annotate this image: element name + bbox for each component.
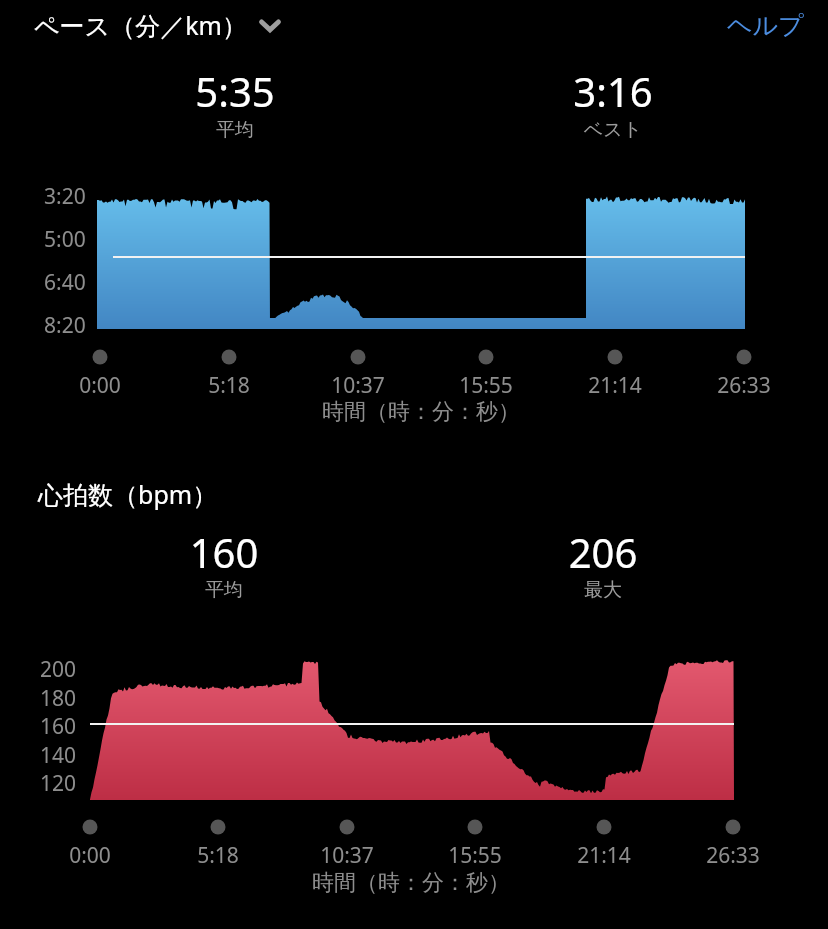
staticText: 6:40 [44,268,86,297]
staticText: 平均 [85,118,385,142]
staticText: 21:14 [515,371,715,400]
staticText: 26:33 [633,841,828,870]
staticText: ヘルプ [727,10,804,41]
staticText: 180 [40,684,77,713]
staticText: 時間（時：分：秒） [221,398,621,426]
staticText: 5:00 [44,225,86,254]
staticText: 26:33 [644,371,828,400]
button[interactable]: ペース（分／km） [34,4,293,46]
staticText: 200 [40,655,77,684]
staticText: 時間（時：分：秒） [211,869,611,897]
staticText: 3:20 [44,182,86,211]
staticText: 8:20 [44,311,86,340]
staticText: 15:55 [375,841,575,870]
other: Change metric [255,10,285,40]
staticText: 0:00 [0,371,200,400]
staticText: 平均 [74,578,374,602]
staticText: 120 [40,769,77,798]
staticText: 15:55 [386,371,586,400]
staticText: 最大 [453,578,753,602]
staticText: 3:16 [463,64,763,118]
staticText: 5:35 [85,64,385,118]
staticText: 160 [40,712,77,741]
staticText: ベスト [463,118,763,142]
staticText: 5:18 [129,371,329,400]
staticText: 140 [40,741,77,770]
staticText: 160 [74,525,374,579]
button[interactable]: ヘルプ [703,2,828,49]
staticText: 5:18 [118,841,318,870]
staticText: 心拍数（bpm） [38,477,218,511]
staticText: 21:14 [504,841,704,870]
staticText: ペース（分／km） [34,8,247,42]
staticText: 0:00 [0,841,190,870]
staticText: 10:37 [258,371,458,400]
staticText: 206 [453,525,753,579]
staticText: 10:37 [247,841,447,870]
